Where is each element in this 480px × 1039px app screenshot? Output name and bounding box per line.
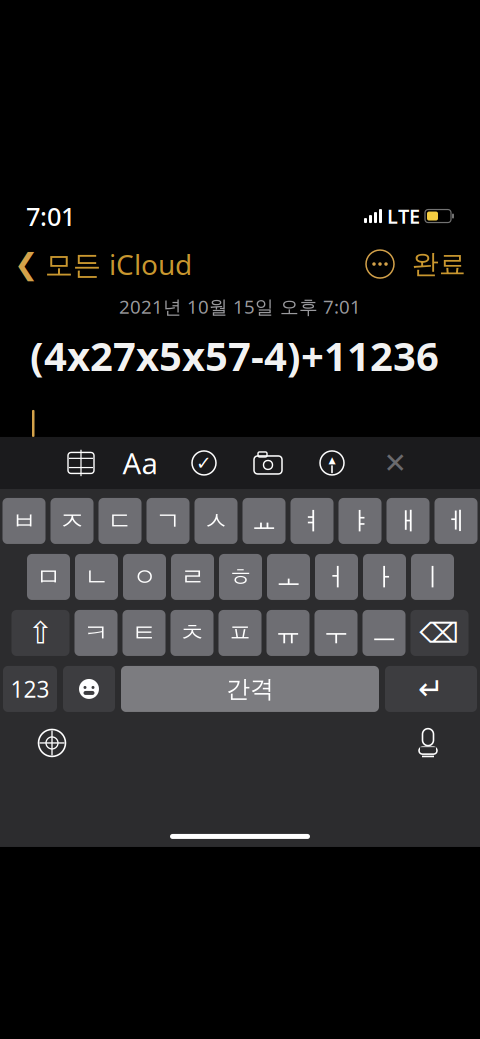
button[interactable]: 완료 — [394, 242, 466, 286]
button[interactable]: ㅇ — [123, 554, 166, 600]
button[interactable]: Emoji — [63, 666, 115, 712]
button[interactable]: ㅓ — [315, 554, 358, 600]
button[interactable]: ㅡ — [362, 610, 405, 656]
staticText: ㅐ — [395, 505, 420, 536]
staticText: 2021년 10월 15일 오후 7:01 — [119, 294, 361, 319]
button[interactable]: ㅗ — [267, 554, 310, 600]
staticText: ㅜ — [323, 617, 348, 648]
button[interactable]: ㅔ — [434, 498, 477, 544]
button[interactable]: Format — [108, 441, 172, 485]
staticText: ㅍ — [227, 617, 252, 648]
staticText: 모든 iCloud — [45, 245, 192, 283]
button[interactable]: Return — [385, 666, 477, 712]
staticText: ㅕ — [299, 505, 324, 536]
button[interactable]: Checklist — [172, 441, 236, 485]
button[interactable]: ㄹ — [171, 554, 214, 600]
staticText: ✓ — [196, 452, 212, 474]
staticText: ㅌ — [131, 617, 156, 648]
staticText: ㅛ — [251, 505, 276, 536]
staticText: ㄹ — [180, 561, 205, 592]
button[interactable]: ㅜ — [314, 610, 357, 656]
staticText: ❮ — [14, 247, 39, 281]
button[interactable]: ㄱ — [146, 498, 189, 544]
button[interactable]: ㄷ — [98, 498, 141, 544]
staticText: ✕ — [383, 447, 406, 479]
staticText: ㅋ — [83, 617, 108, 648]
staticText: ㅈ — [59, 505, 84, 536]
staticText: ㅠ — [275, 617, 300, 648]
button[interactable]: ㅈ — [50, 498, 93, 544]
button[interactable]: Shift — [11, 610, 69, 656]
staticText: ㅗ — [276, 561, 301, 592]
button[interactable]: Close — [364, 441, 426, 485]
staticText: ㅅ — [203, 505, 228, 536]
button[interactable]: ㅍ — [218, 610, 261, 656]
staticText: 완료 — [412, 248, 466, 280]
staticText: ㄷ — [107, 505, 132, 536]
button[interactable]: ㅣ — [411, 554, 454, 600]
button[interactable]: ❮ — [14, 239, 192, 289]
staticText: ⌫ — [419, 617, 459, 649]
staticText: ㅎ — [228, 561, 253, 592]
button[interactable]: ㄴ — [75, 554, 118, 600]
staticText: ▲ — [328, 455, 335, 465]
staticText: ㄴ — [84, 561, 109, 592]
staticText: (4x27x5x57-4)+11236 — [30, 329, 439, 382]
button[interactable]: Next keyboard — [29, 724, 75, 762]
staticText: ㅓ — [324, 561, 349, 592]
button[interactable]: ㅏ — [363, 554, 406, 600]
button[interactable]: Camera — [236, 441, 300, 485]
button[interactable]: ㅌ — [122, 610, 165, 656]
staticText: ㅂ — [11, 505, 36, 536]
staticText: ㅔ — [443, 505, 468, 536]
staticText: 간격 — [226, 674, 274, 704]
staticText: ㅇ — [132, 561, 157, 592]
button[interactable]: Table — [54, 441, 108, 485]
staticText: 123 — [10, 674, 49, 704]
staticText: ㅡ — [371, 617, 396, 648]
button[interactable]: ㅋ — [74, 610, 117, 656]
button[interactable]: ㅠ — [266, 610, 309, 656]
button[interactable]: More — [366, 250, 394, 278]
staticText: ㅑ — [347, 505, 372, 536]
staticText: ㅣ — [420, 561, 445, 592]
staticText: ↵ — [418, 672, 444, 706]
button[interactable]: ㅂ — [2, 498, 45, 544]
staticText: ㅊ — [179, 617, 204, 648]
staticText: Aa — [122, 443, 157, 482]
staticText: ㄱ — [155, 505, 180, 536]
button[interactable]: Dictation — [405, 724, 451, 762]
button[interactable]: ㅐ — [386, 498, 429, 544]
staticText: 7:01 — [26, 199, 75, 233]
staticText: ㅁ — [36, 561, 61, 592]
button[interactable]: Markup — [300, 441, 364, 485]
button[interactable]: 간격 — [121, 666, 379, 712]
button[interactable]: ㅛ — [242, 498, 285, 544]
button[interactable]: Delete — [410, 610, 468, 656]
button[interactable]: ㅁ — [27, 554, 70, 600]
button[interactable]: 123 — [3, 666, 57, 712]
staticText: ⇧ — [27, 616, 53, 650]
staticText: ㅏ — [372, 561, 397, 592]
button[interactable]: ㅅ — [194, 498, 237, 544]
button[interactable]: ㅎ — [219, 554, 262, 600]
button[interactable]: ㅑ — [338, 498, 381, 544]
button[interactable]: ㅊ — [170, 610, 213, 656]
button[interactable]: ㅕ — [290, 498, 333, 544]
staticText: LTE — [387, 203, 420, 229]
